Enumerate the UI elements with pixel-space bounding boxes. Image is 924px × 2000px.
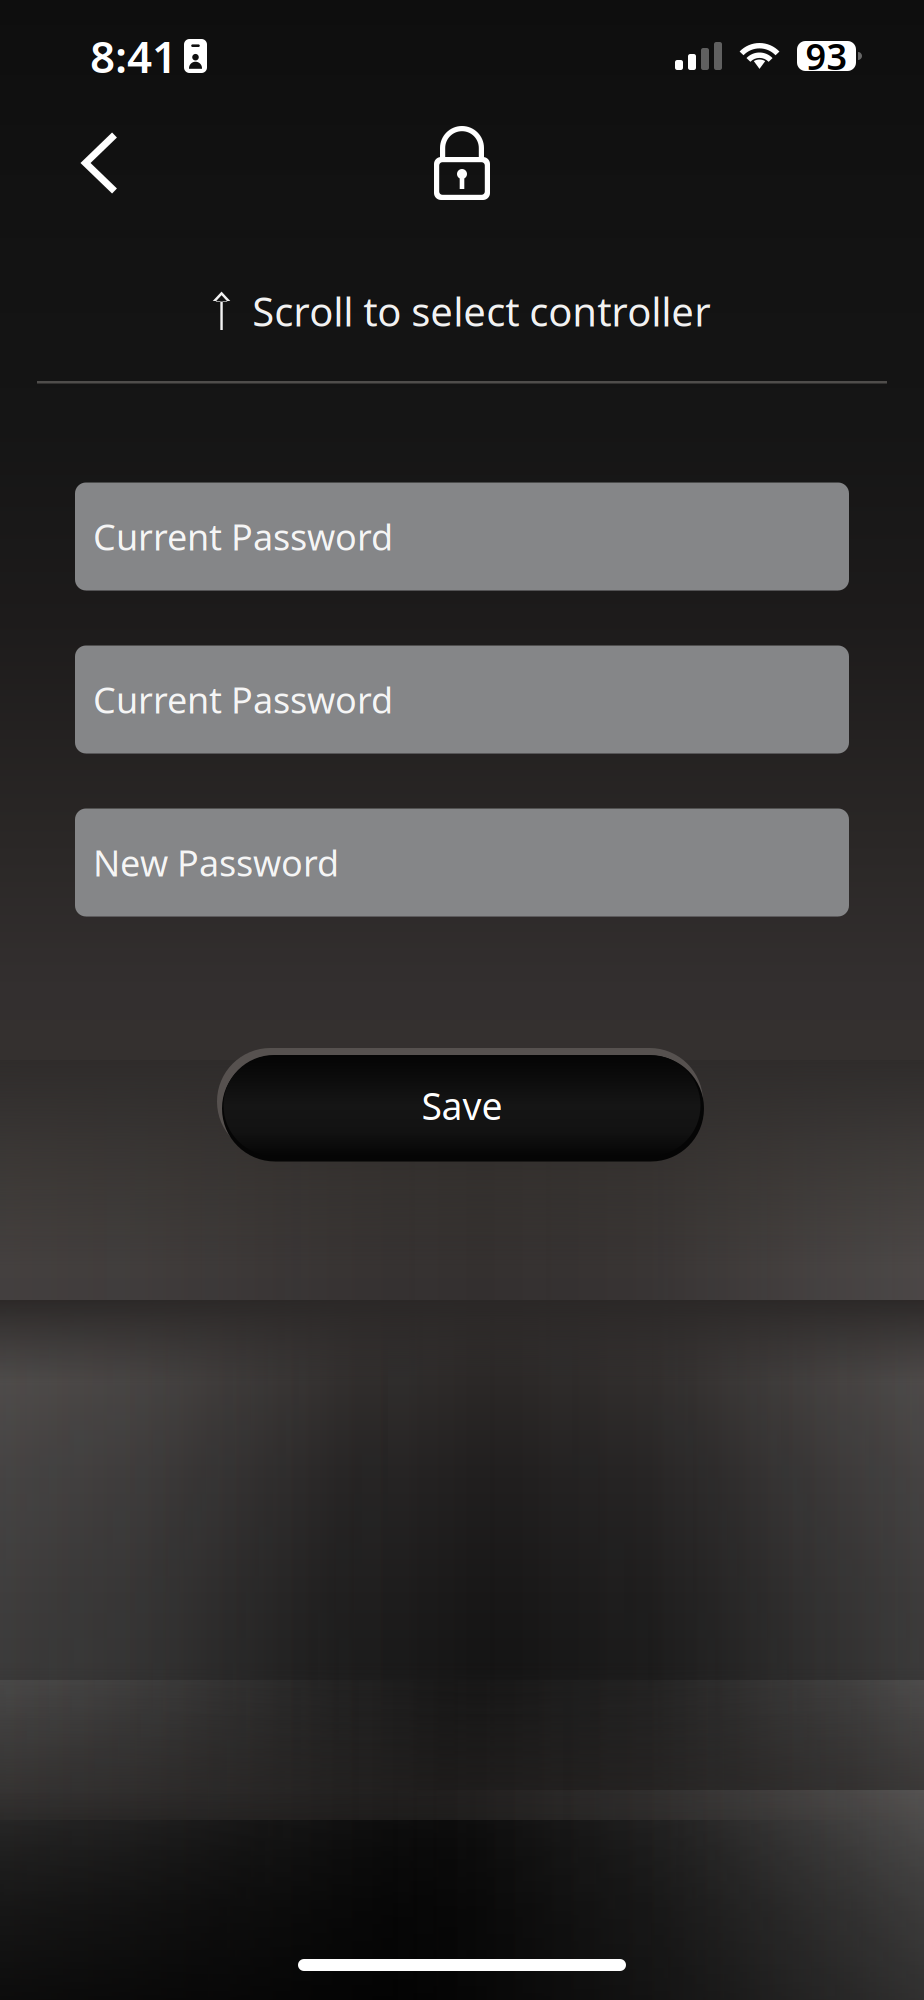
staticText: Current Password [93, 513, 393, 560]
staticText: Current Password [93, 676, 393, 723]
staticText: New Password [93, 839, 339, 886]
staticText: 93 [805, 32, 847, 80]
button[interactable]: New Password [75, 808, 849, 916]
staticText: Scroll to select controller [252, 284, 711, 337]
staticText: Save [421, 1081, 502, 1130]
button[interactable]: Back [52, 113, 148, 213]
button[interactable]: Save [212, 1045, 712, 1165]
button[interactable]: Current Password [75, 482, 849, 590]
button[interactable]: Current Password [75, 645, 849, 753]
staticText: 8:41 [90, 27, 177, 85]
